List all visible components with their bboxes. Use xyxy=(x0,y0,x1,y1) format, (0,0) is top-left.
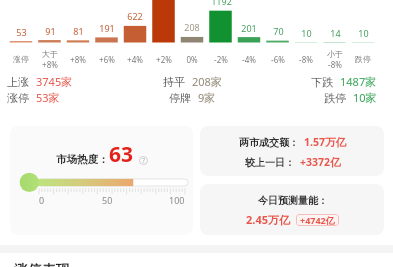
staticText: +8% xyxy=(70,54,86,65)
staticText: ? xyxy=(142,156,146,165)
staticText: 两市成交额： xyxy=(239,136,299,149)
staticText: 1487家 xyxy=(340,74,377,89)
button[interactable]: 两市成交额： xyxy=(200,126,384,176)
staticText: 191 xyxy=(99,22,115,34)
staticText: 81 xyxy=(73,25,84,37)
staticText: 持平 xyxy=(163,75,185,89)
staticText: 50 xyxy=(102,194,113,206)
staticText: 622 xyxy=(127,10,143,22)
staticText: 1192 xyxy=(211,0,232,7)
staticText: 小于 xyxy=(327,49,343,59)
staticText: 0 xyxy=(39,194,45,206)
staticText: 涨停表现 xyxy=(14,262,70,267)
staticText: 10 xyxy=(358,27,369,39)
staticText: +3372亿 xyxy=(300,155,341,169)
staticText: 0% xyxy=(186,54,198,65)
staticText: 100 xyxy=(169,194,185,206)
staticText: 3745家 xyxy=(36,74,73,89)
staticText: 53家 xyxy=(36,90,60,105)
staticText: -6% xyxy=(271,54,285,65)
staticText: 停牌 xyxy=(169,91,191,105)
staticText: +2% xyxy=(156,54,172,65)
staticText: 涨停 xyxy=(13,54,29,64)
staticText: 上涨 xyxy=(7,75,29,89)
staticText: -4% xyxy=(242,54,256,65)
staticText: 91 xyxy=(45,25,56,37)
staticText: 跌停 xyxy=(355,54,371,64)
button[interactable]: 市场热度： xyxy=(10,126,193,235)
staticText: 下跌 xyxy=(311,75,333,89)
staticText: 63 xyxy=(109,140,134,169)
staticText: 跌停 xyxy=(324,91,346,105)
staticText: +8% xyxy=(42,59,58,70)
staticText: +6% xyxy=(99,54,115,65)
button[interactable]: 今日预测量能： xyxy=(200,184,384,235)
staticText: 大于 xyxy=(42,49,58,59)
staticText: 涨停 xyxy=(7,91,29,105)
staticText: 2.45万亿 xyxy=(246,212,290,227)
staticText: -8% xyxy=(328,59,342,70)
staticText: 市场热度： xyxy=(56,153,109,166)
staticText: -8% xyxy=(299,54,313,65)
staticText: 70 xyxy=(273,25,284,37)
staticText: 208家 xyxy=(192,74,222,89)
staticText: 208 xyxy=(184,21,200,33)
staticText: 53 xyxy=(16,26,27,38)
staticText: +4% xyxy=(127,54,143,65)
staticText: 9家 xyxy=(198,90,216,105)
staticText: 今日预测量能： xyxy=(258,194,328,207)
staticText: 14 xyxy=(330,27,341,39)
staticText: +4742亿 xyxy=(300,214,335,226)
staticText: 201 xyxy=(241,22,257,34)
staticText: 较上一日： xyxy=(245,156,295,169)
staticText: 1.57万亿 xyxy=(304,135,346,149)
staticText: 10 xyxy=(301,27,312,39)
staticText: 10家 xyxy=(353,90,377,105)
staticText: -2% xyxy=(214,54,228,65)
